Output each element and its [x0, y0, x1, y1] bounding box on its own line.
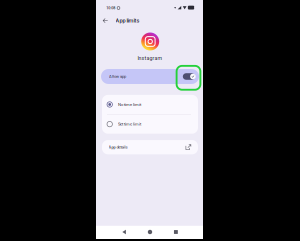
- staticText: No time limit: [118, 102, 141, 107]
- staticText: App limits: [116, 17, 140, 24]
- button[interactable]: Back: [118, 226, 130, 238]
- staticText: 10:08: [106, 6, 115, 10]
- button[interactable]: Set time limit: [102, 114, 198, 134]
- staticText: Set time limit: [118, 122, 141, 126]
- button[interactable]: App details: [102, 140, 198, 154]
- staticText: Allow app: [109, 74, 126, 79]
- button[interactable]: Allow app: [101, 69, 199, 84]
- staticText: Instagram: [137, 55, 162, 61]
- staticText: App details: [108, 145, 127, 150]
- button[interactable]: Recent apps: [170, 226, 182, 238]
- button[interactable]: No time limit: [102, 95, 198, 114]
- button[interactable]: Back: [99, 14, 112, 27]
- button[interactable]: Home: [144, 226, 156, 238]
